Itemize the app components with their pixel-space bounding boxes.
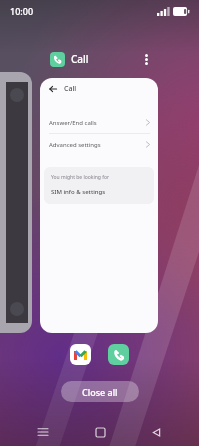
staticText: Answer/End calls — [49, 119, 97, 127]
button[interactable] — [0, 72, 32, 333]
button[interactable]: Answer/End calls — [40, 112, 158, 133]
button[interactable]: Back — [143, 419, 169, 445]
button[interactable]: Close all — [61, 381, 139, 402]
button[interactable]: Call — [49, 78, 158, 100]
staticText: Call — [71, 52, 89, 66]
button[interactable]: Phone — [108, 344, 129, 365]
staticText: SIM info & settings — [51, 188, 106, 196]
staticText: Close all — [82, 386, 118, 398]
staticText: You might be looking for — [51, 174, 110, 181]
staticText: Call — [64, 84, 77, 94]
staticText: Advanced settings — [49, 141, 101, 149]
button[interactable]: More options — [137, 50, 155, 68]
button[interactable]: Home — [87, 419, 113, 445]
button[interactable]: Recent apps — [30, 419, 56, 445]
staticText: 10:00 — [10, 5, 34, 17]
button[interactable]: SIM info & settings — [51, 188, 154, 196]
button[interactable]: Advanced settings — [40, 134, 158, 155]
button[interactable]: Gmail — [70, 344, 91, 365]
button[interactable]: Call — [40, 78, 158, 333]
